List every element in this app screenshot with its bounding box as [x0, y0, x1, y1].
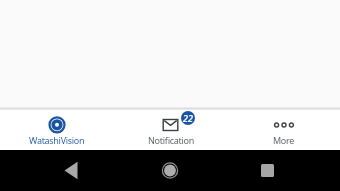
button[interactable]: More [227, 110, 340, 150]
staticText: WatashiVision [29, 134, 85, 146]
button[interactable]: 22 [114, 110, 227, 150]
button[interactable]: WatashiVision [0, 110, 114, 150]
button[interactable] [227, 150, 340, 191]
staticText: Notification [148, 134, 194, 146]
staticText: More [273, 134, 295, 146]
staticText: 22 [183, 112, 193, 124]
button[interactable] [114, 150, 227, 191]
button[interactable] [0, 150, 114, 191]
